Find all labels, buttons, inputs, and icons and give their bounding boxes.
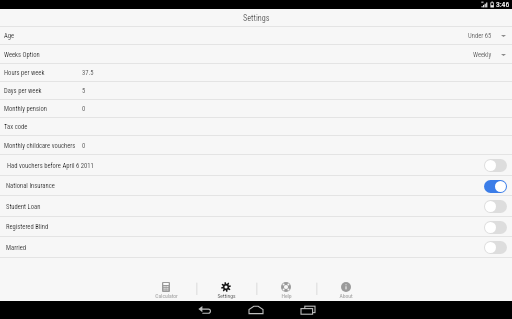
staticText: Settings — [217, 293, 236, 300]
staticText: 3:46 — [496, 0, 510, 9]
button[interactable]: Settings — [196, 259, 256, 301]
button[interactable]: Weeks Option — [0, 45, 512, 64]
staticText: Monthly pension — [4, 105, 47, 113]
button[interactable]: Student Loan — [0, 196, 512, 217]
staticText: Monthly childcare vouchers — [4, 142, 76, 150]
staticText: Settings — [243, 13, 270, 23]
button[interactable]: About — [316, 259, 376, 301]
staticText: Weekly — [473, 51, 492, 59]
staticText: National Insurance — [6, 182, 55, 190]
staticText: Had vouchers before April 6 2011 — [7, 162, 94, 170]
button[interactable]: Had vouchers before April 6 2011 — [0, 155, 512, 176]
button[interactable]: Registered Blind — [0, 217, 512, 237]
button[interactable]: Age — [0, 27, 512, 45]
button[interactable]: Calculator — [136, 259, 196, 301]
staticText: Registered Blind — [6, 223, 49, 231]
staticText: Married — [6, 244, 27, 252]
staticText: Tax code — [4, 123, 28, 131]
button[interactable]: Help — [256, 259, 316, 301]
staticText: Under 65 — [468, 32, 492, 40]
button[interactable]: Home — [236, 301, 276, 319]
button[interactable]: Tax code — [0, 118, 512, 136]
staticText: 0 — [82, 105, 86, 113]
staticText: About — [339, 293, 353, 300]
staticText: 0 — [82, 142, 86, 150]
staticText: Age — [4, 32, 15, 40]
button[interactable]: Back — [185, 301, 225, 319]
staticText: Hours per week — [4, 69, 45, 77]
button[interactable]: National Insurance — [0, 176, 512, 196]
staticText: Weeks Option — [4, 51, 40, 59]
staticText: 37.5 — [82, 69, 94, 77]
staticText: Help — [281, 293, 292, 300]
button[interactable]: Monthly pension — [0, 100, 512, 118]
button[interactable]: Hours per week — [0, 64, 512, 82]
button[interactable]: Monthly childcare vouchers — [0, 136, 512, 155]
button[interactable]: Married — [0, 237, 512, 258]
button[interactable]: Recents — [288, 301, 328, 319]
staticText: Days per week — [4, 87, 42, 95]
staticText: 5 — [82, 87, 86, 95]
staticText: Calculator — [155, 293, 178, 300]
button[interactable]: Days per week — [0, 82, 512, 100]
staticText: Student Loan — [6, 203, 41, 211]
